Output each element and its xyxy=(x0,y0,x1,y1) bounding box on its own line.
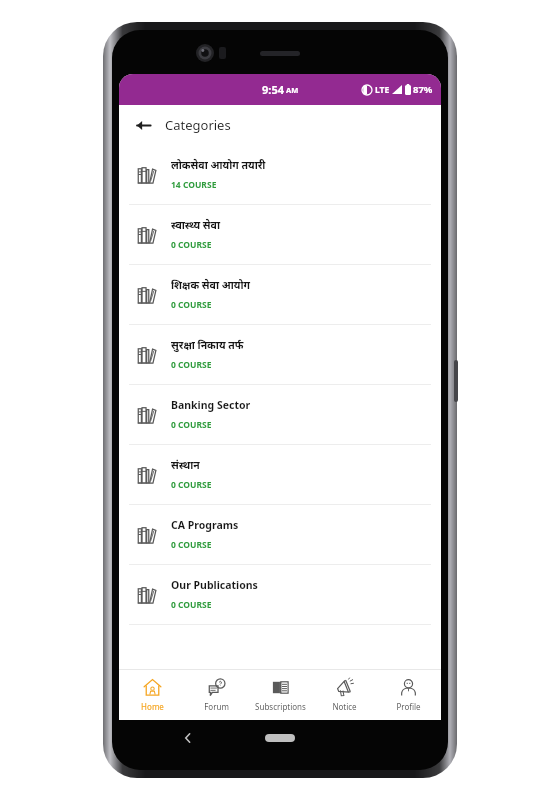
button[interactable]: Profile xyxy=(377,670,439,720)
staticText: Categories xyxy=(165,116,231,134)
staticText: 0 COURSE xyxy=(171,239,212,251)
staticText: Our Publications xyxy=(171,578,258,592)
staticText: CA Programs xyxy=(171,518,239,532)
button[interactable]: सुरक्षा निकाय तर्फ xyxy=(119,325,441,384)
staticText: 0 COURSE xyxy=(171,479,212,491)
staticText: Home xyxy=(141,701,164,712)
staticText: Profile xyxy=(396,701,421,712)
button[interactable]: स्वास्थ्य सेवा xyxy=(119,205,441,264)
staticText: 0 COURSE xyxy=(171,419,212,431)
staticText: Notice xyxy=(332,701,357,712)
button[interactable]: Subscriptions xyxy=(249,670,311,720)
staticText: AM xyxy=(286,85,299,95)
button[interactable]: Home xyxy=(265,734,295,742)
button[interactable]: CA Programs xyxy=(119,505,441,564)
staticText: 0 COURSE xyxy=(171,539,212,551)
staticText: 0 COURSE xyxy=(171,299,212,311)
staticText: शिक्षक सेवा आयोग xyxy=(171,278,251,292)
staticText: Forum xyxy=(204,701,229,712)
staticText: संस्थान xyxy=(171,458,200,472)
button[interactable]: Notice xyxy=(313,670,375,720)
staticText: 9:54 xyxy=(262,82,284,97)
staticText: 0 COURSE xyxy=(171,599,212,611)
staticText: Banking Sector xyxy=(171,398,251,412)
button[interactable]: Our Publications xyxy=(119,565,441,624)
staticText: लोकसेवा आयोग तयारी xyxy=(171,158,266,172)
staticText: सुरक्षा निकाय तर्फ xyxy=(171,338,244,352)
staticText: 0 COURSE xyxy=(171,359,212,371)
button[interactable]: शिक्षक सेवा आयोग xyxy=(119,265,441,324)
staticText: LTE xyxy=(375,84,390,96)
button[interactable]: Home xyxy=(121,670,183,720)
button[interactable]: Forum xyxy=(185,670,247,720)
staticText: Subscriptions xyxy=(255,701,306,712)
button[interactable]: Banking Sector xyxy=(119,385,441,444)
button[interactable]: Back xyxy=(181,731,195,745)
staticText: स्वास्थ्य सेवा xyxy=(171,218,220,232)
staticText: 14 COURSE xyxy=(171,179,217,191)
button[interactable]: लोकसेवा आयोग तयारी xyxy=(119,145,441,204)
staticText: 87% xyxy=(413,83,433,96)
button[interactable]: संस्थान xyxy=(119,445,441,504)
button[interactable]: Back xyxy=(127,109,159,141)
